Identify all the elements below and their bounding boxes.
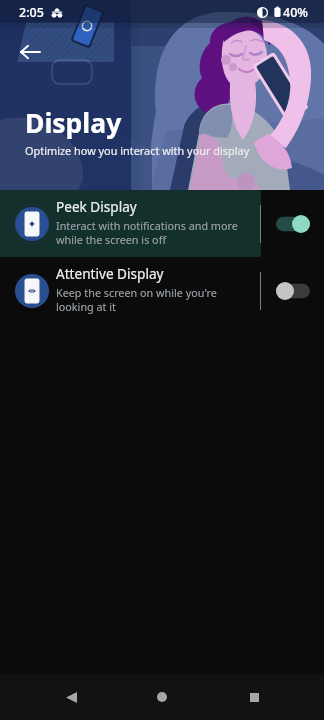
staticText: Display: [25, 105, 122, 141]
button[interactable]: Recents: [233, 676, 275, 718]
button[interactable]: Home: [141, 676, 183, 718]
staticText: Interact with notifications and more whi…: [56, 218, 238, 247]
staticText: Attentive Display: [56, 264, 164, 283]
button[interactable]: Peek Display: [0, 190, 324, 257]
staticText: Peek Display: [56, 197, 137, 216]
button[interactable]: Attentive Display: [276, 282, 310, 300]
staticText: 40%: [283, 4, 308, 21]
button[interactable]: Back: [10, 32, 50, 72]
button[interactable]: Back: [50, 676, 92, 718]
staticText: Keep the screen on while you're looking …: [56, 285, 217, 314]
button[interactable]: Attentive Display: [0, 257, 324, 324]
staticText: 2:05: [19, 4, 44, 21]
button[interactable]: Peek Display: [276, 215, 310, 233]
staticText: Optimize how you interact with your disp…: [25, 143, 250, 158]
